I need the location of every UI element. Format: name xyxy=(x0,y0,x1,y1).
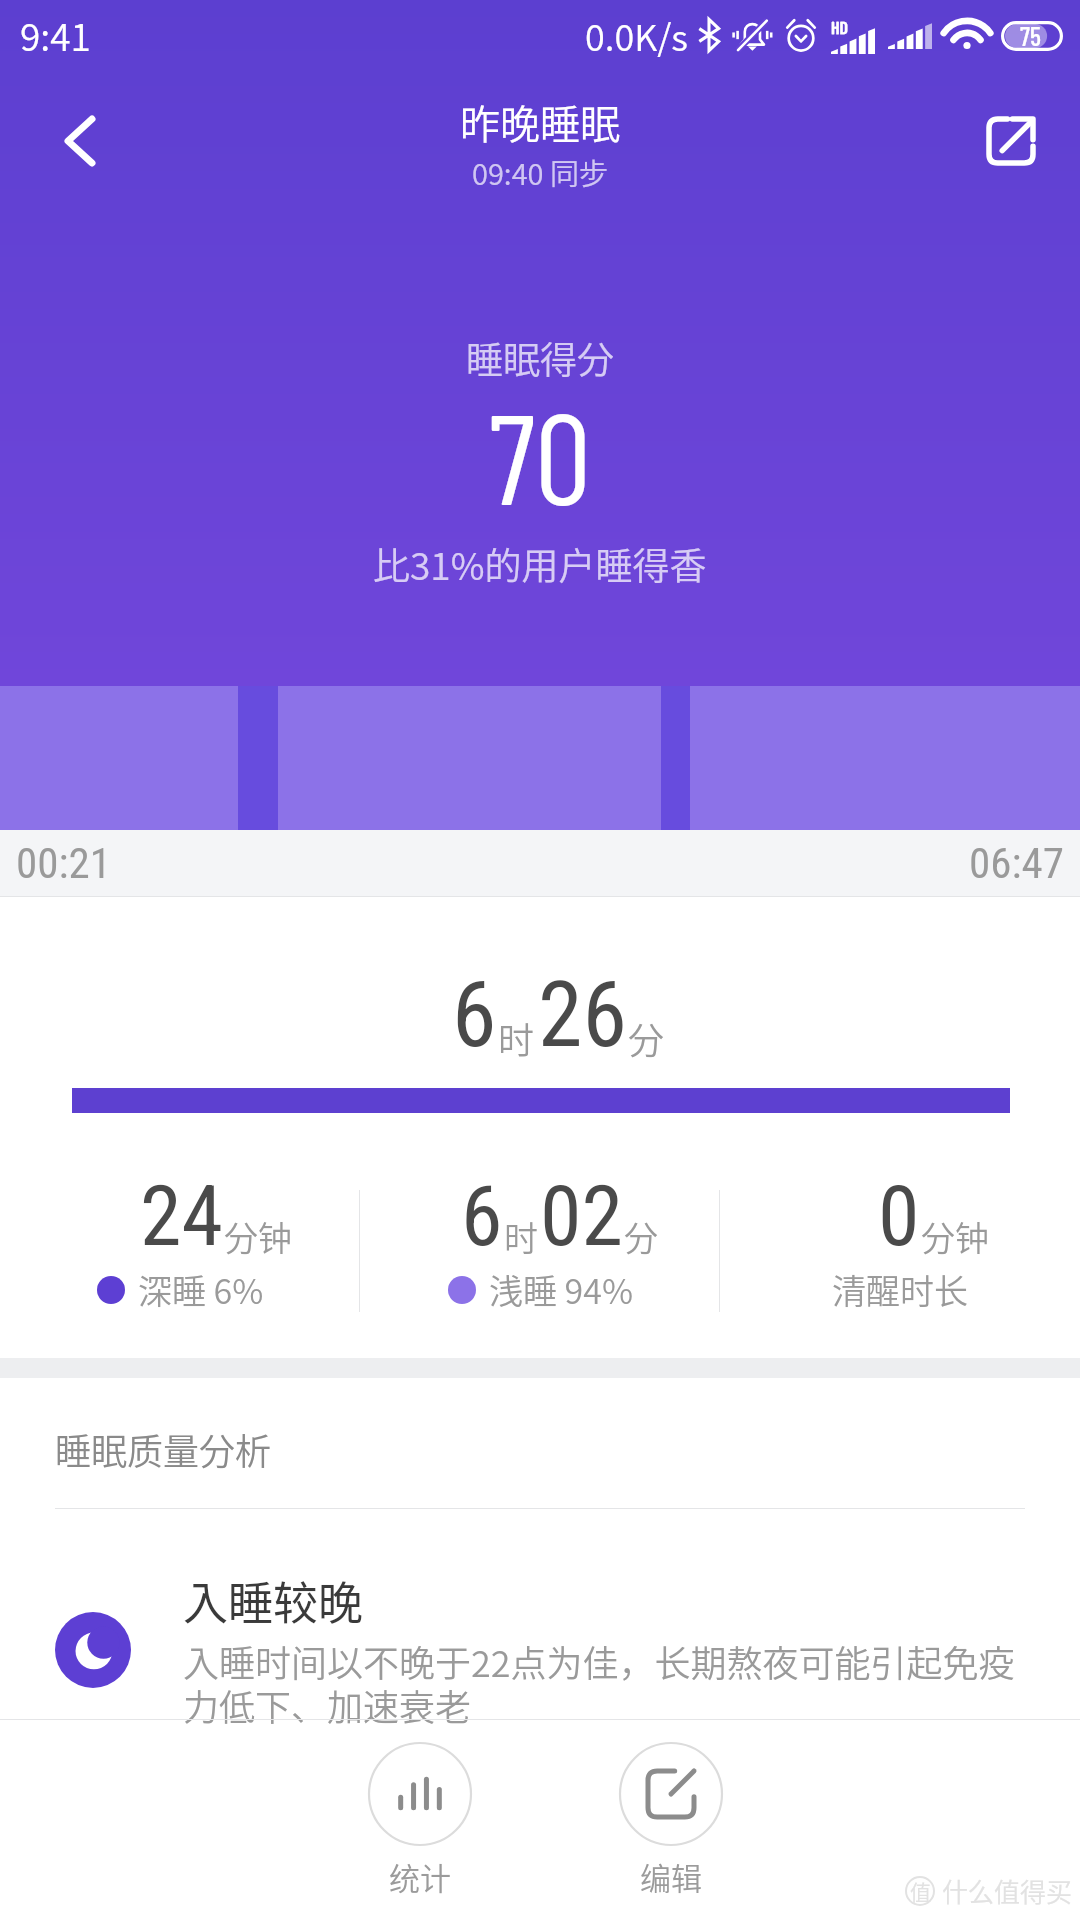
staticText: 分钟 xyxy=(921,1212,989,1261)
staticText: 编辑 xyxy=(640,1854,702,1899)
staticText: 入睡较晚 xyxy=(183,1568,364,1633)
staticText: 时 xyxy=(504,1212,538,1261)
staticText: 0.0K/s xyxy=(585,9,688,61)
staticText: 睡眠质量分析 xyxy=(55,1423,272,1475)
staticText: 比31%的用户睡得香 xyxy=(373,537,707,591)
staticText: 6 xyxy=(452,963,497,1068)
staticText: 0 xyxy=(878,1167,920,1265)
button[interactable]: Share xyxy=(961,91,1061,191)
staticText: 昨晚睡眠 xyxy=(460,93,620,151)
staticText: 06:47 xyxy=(969,838,1064,888)
staticText: 清醒时长 xyxy=(832,1265,968,1314)
button[interactable]: 统计 xyxy=(347,1742,492,1899)
staticText: 00:21 xyxy=(16,838,111,888)
staticText: 24 xyxy=(140,1167,223,1265)
staticText: 分 xyxy=(628,1012,665,1064)
staticText: 9:41 xyxy=(20,8,91,62)
staticText: 6 xyxy=(461,1167,503,1265)
staticText: 分 xyxy=(624,1212,658,1261)
staticText: 睡眠得分 xyxy=(466,331,614,385)
button[interactable]: Back xyxy=(30,91,130,191)
staticText: 时 xyxy=(498,1012,535,1064)
staticText: 深睡 6% xyxy=(138,1265,264,1314)
staticText: 02 xyxy=(540,1167,623,1265)
staticText: 入睡时间以不晚于22点为佳，长期熬夜可能引起免疫力低下、加速衰老 xyxy=(183,1635,1025,1732)
staticText: HD xyxy=(831,16,848,38)
staticText: 26 xyxy=(538,963,627,1068)
staticText: 什么值得买 xyxy=(942,1872,1073,1910)
staticText: 浅睡 94% xyxy=(489,1265,633,1314)
staticText: 70 xyxy=(489,379,592,530)
staticText: 值 xyxy=(910,1876,931,1906)
button[interactable]: 编辑 xyxy=(598,1742,743,1899)
button[interactable]: 入睡较晚 xyxy=(55,1568,1080,1732)
staticText: 75 xyxy=(1020,20,1041,51)
staticText: 09:40 同步 xyxy=(472,151,608,193)
staticText: 分钟 xyxy=(224,1212,292,1261)
staticText: 统计 xyxy=(389,1854,451,1899)
